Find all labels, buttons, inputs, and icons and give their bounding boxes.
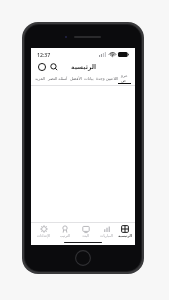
staticText: المزيد xyxy=(35,76,46,81)
staticText: الرئيسية xyxy=(71,63,96,70)
button[interactable]: Search xyxy=(48,61,59,72)
button[interactable]: البث xyxy=(75,223,96,240)
staticText: البث xyxy=(82,234,89,238)
staticText: الأفضل xyxy=(70,76,82,81)
staticText: المباريات xyxy=(100,234,113,238)
button[interactable]: المزيد xyxy=(34,76,47,81)
staticText: الرئيسية xyxy=(118,234,132,238)
button[interactable]: الإعدادات xyxy=(33,223,54,240)
button[interactable]: أسئلة النصر xyxy=(47,76,69,81)
button[interactable]: بيانات xyxy=(83,76,95,81)
button[interactable]: المباريات xyxy=(96,223,117,240)
staticText: اللاعبين وجدة xyxy=(96,76,119,81)
button[interactable]: الترتيب xyxy=(54,223,75,240)
button[interactable]: الرئيسية xyxy=(117,223,133,240)
staticText: أسئلة النصر xyxy=(48,76,68,81)
staticText: الإعدادات xyxy=(37,234,50,238)
staticText: بيانات xyxy=(84,76,94,81)
staticText: 12:37 xyxy=(37,51,51,58)
staticText: عروض xyxy=(121,73,131,83)
button[interactable]: اللاعبين وجدة xyxy=(95,76,120,81)
button[interactable]: الأفضل xyxy=(69,76,83,81)
button[interactable]: Camera xyxy=(36,61,47,72)
staticText: الترتيب xyxy=(60,234,70,238)
button[interactable]: عروض xyxy=(120,73,132,83)
